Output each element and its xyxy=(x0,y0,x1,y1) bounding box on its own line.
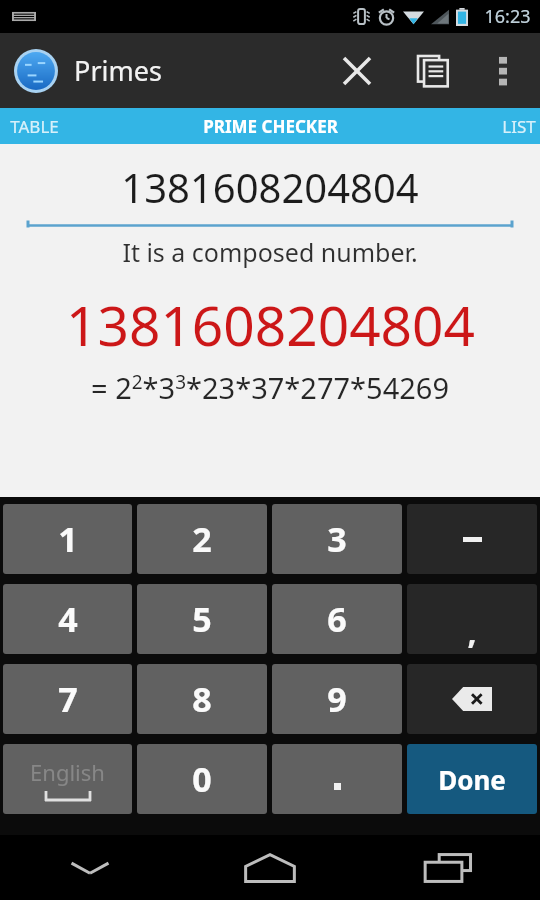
staticText: 1381608204804 xyxy=(121,160,419,214)
button[interactable]: PRIME CHECKER xyxy=(145,108,395,144)
button[interactable]: 3 xyxy=(272,504,402,574)
staticText: LIST xyxy=(502,115,536,138)
button[interactable]: 7 xyxy=(3,664,132,734)
staticText: TABLE xyxy=(10,115,59,138)
button[interactable]: Minus xyxy=(407,504,537,574)
button[interactable]: 1381608204804 xyxy=(0,160,540,214)
button[interactable]: 0 xyxy=(137,744,267,814)
staticText: 3 xyxy=(327,516,347,562)
button[interactable]: Home xyxy=(180,835,360,900)
button[interactable]: 1 xyxy=(3,504,132,574)
staticText: 1381608204804 xyxy=(66,287,475,362)
staticText: It is a composed number. xyxy=(122,235,418,269)
staticText: 8 xyxy=(192,676,212,722)
button[interactable]: TABLE xyxy=(0,108,120,144)
button[interactable]: Comma xyxy=(407,584,537,654)
button[interactable]: Delete xyxy=(407,664,537,734)
button[interactable]: 5 xyxy=(137,584,267,654)
staticText: 0 xyxy=(192,756,212,802)
button[interactable]: 8 xyxy=(137,664,267,734)
button[interactable]: 4 xyxy=(3,584,132,654)
staticText: English xyxy=(30,757,105,787)
button[interactable]: Done xyxy=(407,744,537,814)
staticText: PRIME CHECKER xyxy=(203,115,338,138)
button[interactable]: Copy xyxy=(394,33,472,108)
button[interactable]: 2 xyxy=(137,504,267,574)
button[interactable]: 6 xyxy=(272,584,402,654)
staticText: 9 xyxy=(327,676,347,722)
staticText: 6 xyxy=(327,596,347,642)
button[interactable]: 9 xyxy=(272,664,402,734)
staticText: Primes xyxy=(74,52,162,89)
staticText: 16:23 xyxy=(484,4,531,29)
staticText: 7 xyxy=(58,676,78,722)
button[interactable]: LIST xyxy=(430,108,540,144)
button[interactable]: Clear xyxy=(320,33,394,108)
button[interactable]: Change language xyxy=(3,744,132,814)
staticText: 5 xyxy=(192,596,212,642)
staticText: 2 xyxy=(192,516,212,562)
button[interactable]: Hide keyboard xyxy=(0,835,180,900)
button[interactable]: Period xyxy=(272,744,402,814)
staticText: 1 xyxy=(58,516,78,562)
button[interactable]: Recent apps xyxy=(360,835,540,900)
staticText: = 22*33*23*37*277*54269 xyxy=(91,368,449,407)
button[interactable]: More options xyxy=(472,33,534,108)
staticText: Done xyxy=(438,762,506,797)
staticText: , xyxy=(467,610,477,654)
staticText: 4 xyxy=(58,596,78,642)
